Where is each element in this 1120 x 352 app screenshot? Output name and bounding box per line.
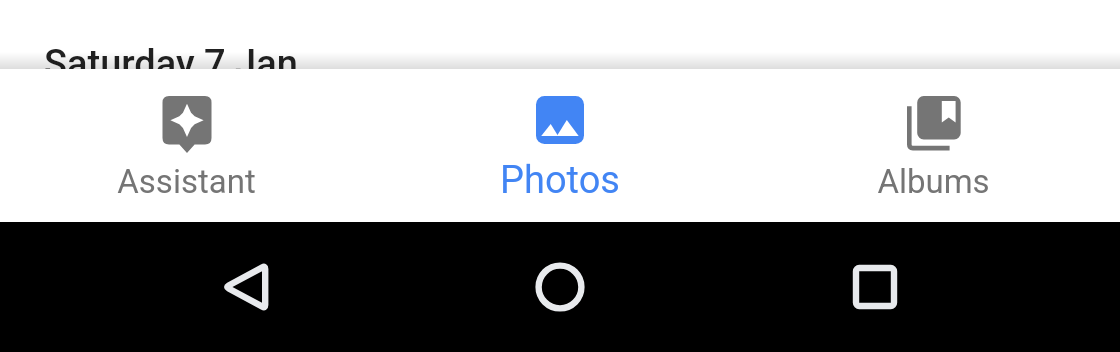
staticText: Albums [877,162,990,201]
button[interactable]: Assistant [0,69,373,222]
button[interactable]: Recent apps [805,222,945,352]
button[interactable]: Back [177,222,317,352]
staticText: Saturday 7 Jan [44,42,298,87]
staticText: Photos [500,158,620,203]
staticText: Assistant [117,162,256,201]
button[interactable]: Home [490,222,630,352]
button[interactable]: Albums [747,69,1120,222]
button[interactable]: Photos [373,69,747,222]
